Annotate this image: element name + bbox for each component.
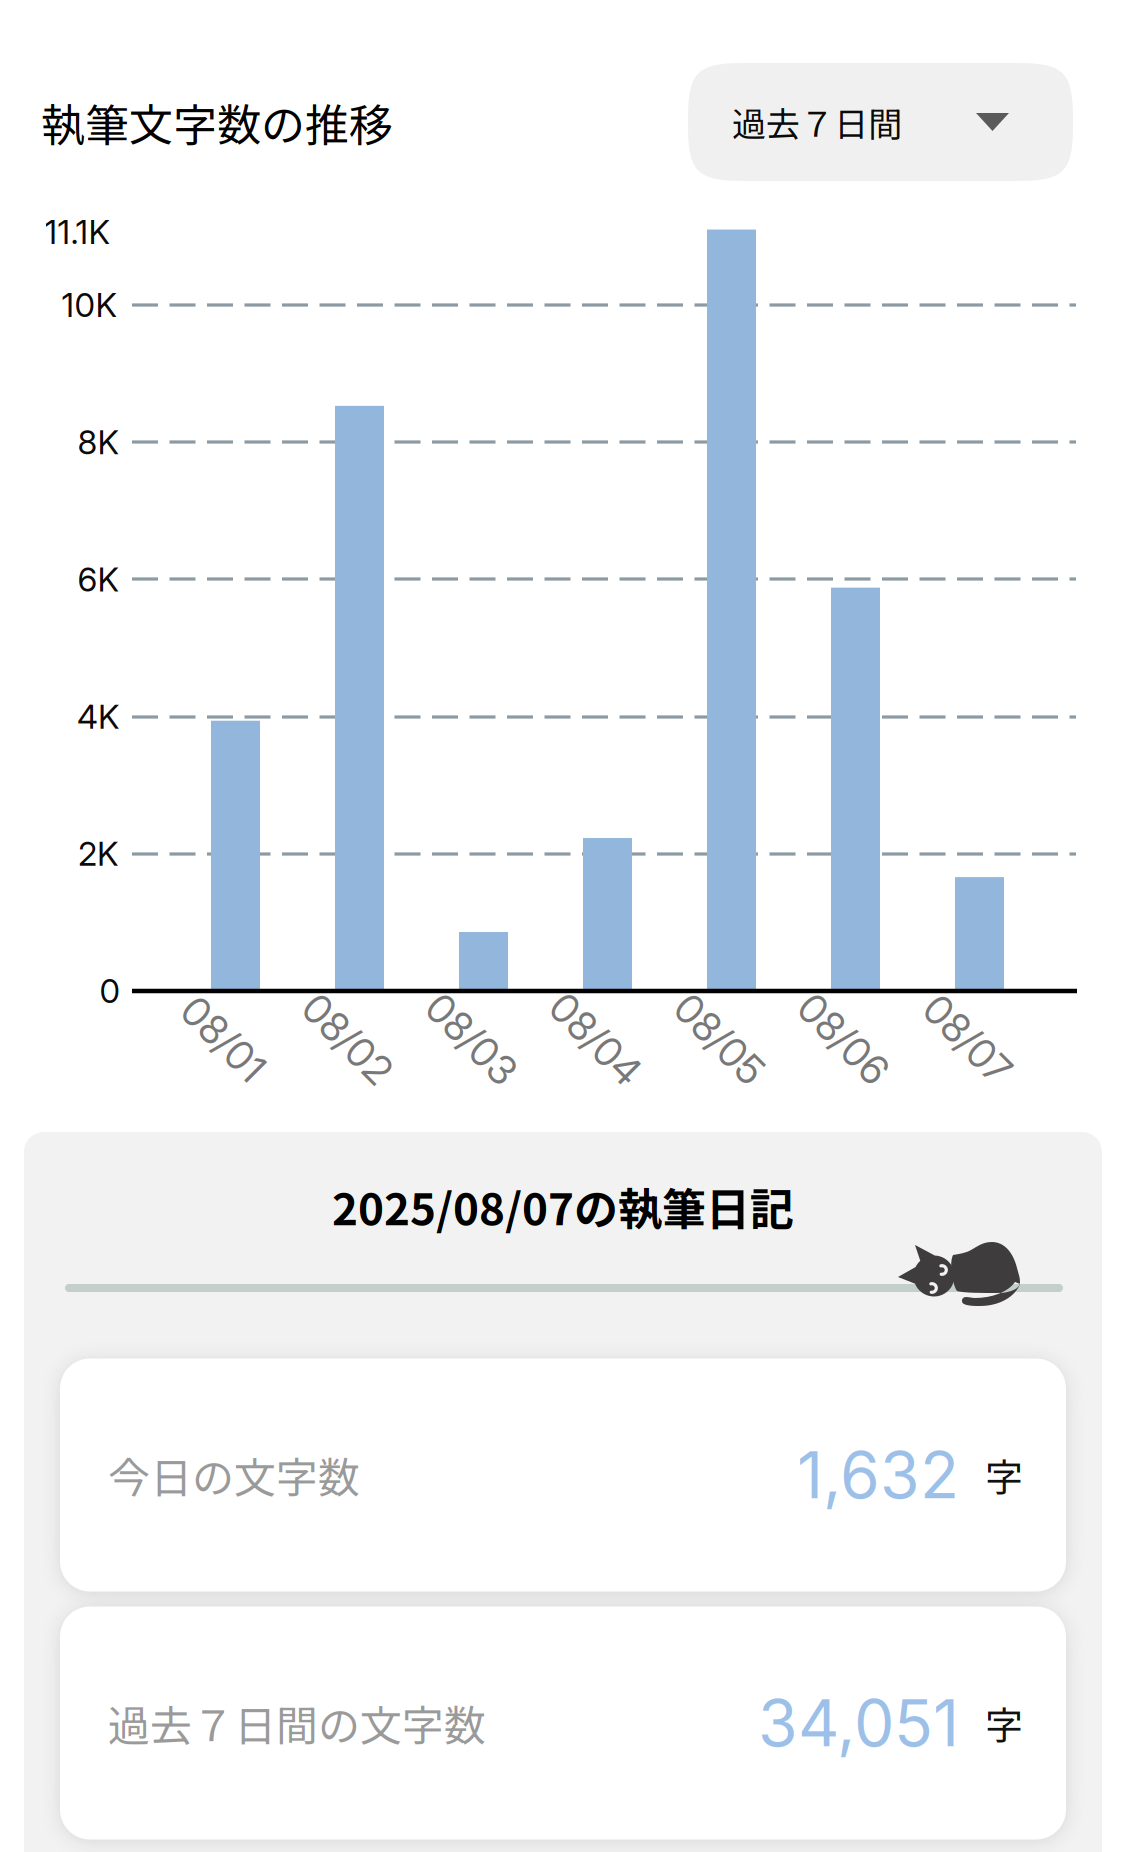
button[interactable]: 過去７日間の文字数: [60, 1606, 1066, 1839]
button[interactable]: 今日の文字数: [60, 1358, 1066, 1591]
staticText: 1,632: [797, 1436, 959, 1514]
staticText: 11.1K: [44, 212, 109, 252]
staticText: 執筆文字数の推移: [41, 90, 393, 154]
staticText: 過去７日間の文字数: [108, 1693, 486, 1753]
staticText: 2K: [78, 834, 118, 874]
staticText: 34,051: [758, 1684, 959, 1762]
staticText: 字: [985, 1447, 1023, 1502]
staticText: 2025/08/07の執筆日記: [332, 1174, 794, 1238]
staticText: 08/03: [416, 1015, 526, 1063]
staticText: 08/07: [914, 1015, 1020, 1063]
staticText: 08/06: [788, 1015, 898, 1063]
staticText: 4K: [77, 697, 119, 737]
staticText: 8K: [77, 422, 118, 462]
button[interactable]: 過去７日間: [688, 63, 1073, 181]
staticText: 10K: [61, 285, 116, 325]
staticText: 今日の文字数: [108, 1445, 360, 1505]
staticText: 6K: [77, 559, 118, 599]
staticText: 08/01: [173, 1015, 274, 1063]
staticText: 08/04: [540, 1015, 651, 1063]
staticText: 08/02: [293, 1015, 402, 1063]
staticText: 字: [985, 1695, 1023, 1750]
staticText: 08/05: [665, 1015, 774, 1063]
staticText: 0: [99, 971, 120, 1011]
staticText: 過去７日間: [732, 97, 902, 147]
